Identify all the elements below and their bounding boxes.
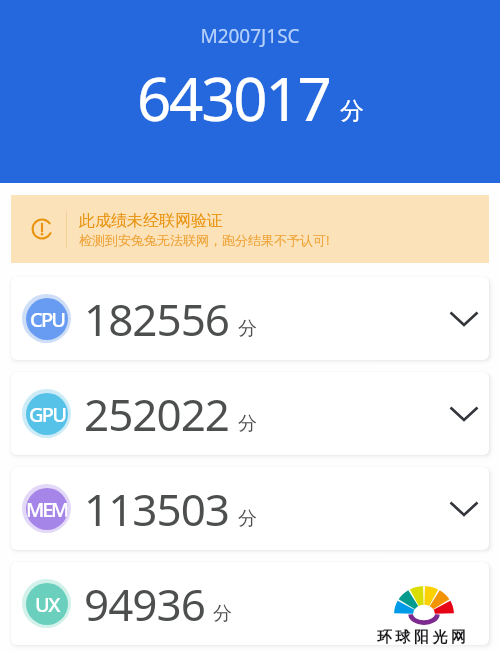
button[interactable]: Expand CPU details bbox=[446, 301, 482, 337]
button[interactable]: UX bbox=[11, 562, 489, 645]
button[interactable]: 此成绩未经联网验证 bbox=[11, 195, 489, 263]
staticText: UX bbox=[35, 591, 59, 618]
staticText: GPU bbox=[29, 401, 66, 428]
staticText: 643017 bbox=[137, 57, 330, 139]
staticText: M2007J1SC bbox=[0, 23, 500, 49]
staticText: 检测到安兔兔无法联网，跑分结果不予认可! bbox=[79, 231, 330, 249]
staticText: 分 bbox=[238, 507, 257, 531]
staticText: 此成绩未经联网验证 bbox=[79, 211, 223, 231]
staticText: 252022 bbox=[84, 384, 230, 444]
button[interactable]: Expand MEM details bbox=[446, 491, 482, 527]
staticText: 分 bbox=[213, 602, 232, 626]
staticText: CPU bbox=[30, 306, 65, 333]
staticText: 113503 bbox=[84, 479, 230, 539]
staticText: MEM bbox=[26, 496, 68, 523]
button[interactable]: CPU bbox=[11, 277, 489, 360]
button[interactable]: MEM bbox=[11, 467, 489, 550]
staticText: 94936 bbox=[84, 574, 205, 634]
staticText: 分 bbox=[238, 412, 257, 436]
button[interactable]: Expand GPU details bbox=[446, 396, 482, 432]
staticText: 分 bbox=[238, 317, 257, 341]
staticText: 分 bbox=[340, 96, 364, 126]
staticText: 182556 bbox=[84, 289, 230, 349]
button[interactable]: GPU bbox=[11, 372, 489, 455]
staticText: 环球阳光网 bbox=[377, 628, 470, 647]
